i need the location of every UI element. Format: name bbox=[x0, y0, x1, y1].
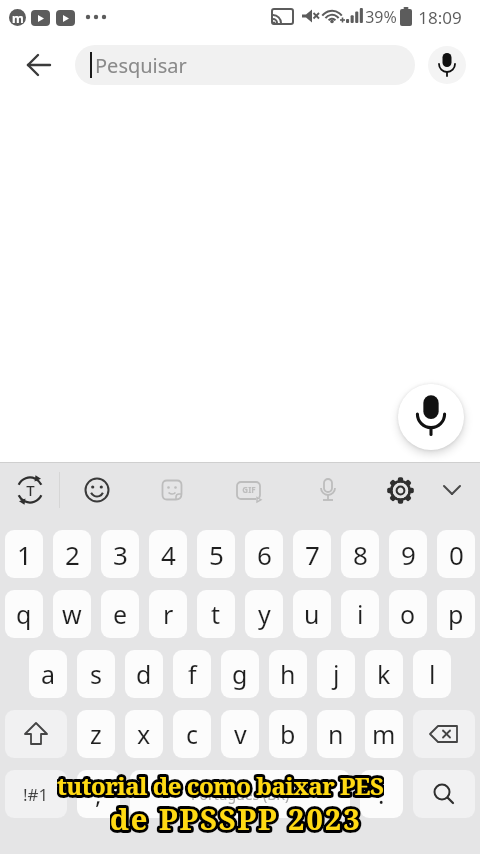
button[interactable]: x bbox=[125, 710, 163, 758]
button[interactable] bbox=[442, 484, 462, 496]
button[interactable] bbox=[84, 477, 110, 503]
button[interactable]: r bbox=[149, 590, 187, 638]
staticText: q bbox=[16, 597, 32, 631]
button[interactable]: u bbox=[293, 590, 331, 638]
button[interactable] bbox=[236, 481, 261, 500]
button[interactable]: !#1 bbox=[5, 770, 67, 818]
staticText: e bbox=[113, 597, 128, 631]
staticText: s bbox=[90, 657, 102, 691]
button[interactable]: 7 bbox=[293, 530, 331, 578]
button[interactable]: 0 bbox=[437, 530, 475, 578]
button[interactable]: a bbox=[29, 650, 67, 698]
button[interactable]: h bbox=[269, 650, 307, 698]
staticText: j bbox=[333, 657, 340, 691]
staticText: 0 bbox=[449, 537, 464, 572]
staticText: 3 bbox=[113, 537, 128, 572]
staticText: . bbox=[378, 778, 385, 811]
button[interactable]: 9 bbox=[389, 530, 427, 578]
button[interactable]: b bbox=[269, 710, 307, 758]
staticText: t bbox=[211, 597, 221, 631]
button[interactable] bbox=[15, 475, 45, 505]
button[interactable] bbox=[413, 770, 475, 818]
staticText: k bbox=[377, 657, 391, 691]
staticText: 4 bbox=[161, 537, 176, 572]
staticText: w bbox=[62, 597, 82, 631]
button[interactable]: m bbox=[365, 710, 403, 758]
staticText: m bbox=[372, 717, 396, 751]
button[interactable]: 5 bbox=[197, 530, 235, 578]
staticText: , bbox=[95, 778, 102, 811]
staticText: h bbox=[280, 657, 296, 691]
button[interactable]: c bbox=[173, 710, 211, 758]
staticText: 39% bbox=[365, 6, 397, 28]
staticText: p bbox=[448, 597, 464, 631]
button[interactable]: p bbox=[437, 590, 475, 638]
staticText: 5 bbox=[209, 537, 224, 572]
button[interactable]: 1 bbox=[5, 530, 43, 578]
button[interactable]: Português (BR) bbox=[130, 770, 350, 818]
staticText: tutorial de como baixar PES bbox=[57, 769, 384, 801]
button[interactable]: d bbox=[125, 650, 163, 698]
staticText: Português (BR) bbox=[191, 785, 290, 804]
staticText: x bbox=[137, 717, 151, 751]
button[interactable] bbox=[386, 476, 415, 505]
staticText: tutorial de como baixar PES bbox=[57, 769, 384, 801]
button[interactable]: 4 bbox=[149, 530, 187, 578]
staticText: z bbox=[90, 717, 102, 751]
button[interactable] bbox=[314, 477, 342, 505]
button[interactable]: , bbox=[77, 770, 120, 818]
staticText: c bbox=[186, 717, 199, 751]
button[interactable] bbox=[5, 710, 67, 758]
button[interactable]: s bbox=[77, 650, 115, 698]
button[interactable] bbox=[413, 710, 475, 758]
button[interactable]: g bbox=[221, 650, 259, 698]
button[interactable]: 3 bbox=[101, 530, 139, 578]
staticText: o bbox=[400, 597, 416, 631]
button[interactable] bbox=[398, 384, 464, 450]
button[interactable]: w bbox=[53, 590, 91, 638]
staticText: y bbox=[258, 597, 271, 631]
staticText: 9 bbox=[401, 537, 416, 572]
staticText: v bbox=[234, 717, 247, 751]
staticText: l bbox=[429, 657, 436, 691]
button[interactable]: o bbox=[389, 590, 427, 638]
staticText: 1 bbox=[17, 537, 32, 572]
button[interactable]: 2 bbox=[53, 530, 91, 578]
staticText: de PPSSPP 2023 bbox=[110, 799, 362, 833]
staticText: de PPSSPP 2023 bbox=[110, 799, 362, 833]
button[interactable]: . bbox=[360, 770, 403, 818]
staticText: n bbox=[328, 717, 344, 751]
button[interactable]: k bbox=[365, 650, 403, 698]
staticText: b bbox=[280, 717, 296, 751]
staticText: f bbox=[188, 657, 197, 691]
button[interactable]: n bbox=[317, 710, 355, 758]
staticText: g bbox=[232, 657, 248, 691]
button[interactable]: Pesquisar bbox=[75, 45, 415, 85]
staticText: 7 bbox=[305, 537, 320, 572]
button[interactable]: z bbox=[77, 710, 115, 758]
button[interactable]: e bbox=[101, 590, 139, 638]
button[interactable] bbox=[428, 46, 466, 84]
staticText: d bbox=[136, 657, 152, 691]
button[interactable]: 8 bbox=[341, 530, 379, 578]
staticText: T bbox=[26, 480, 35, 500]
staticText: 8 bbox=[353, 537, 368, 572]
button[interactable]: y bbox=[245, 590, 283, 638]
button[interactable]: t bbox=[197, 590, 235, 638]
staticText: u bbox=[304, 597, 320, 631]
staticText: r bbox=[163, 597, 174, 631]
button[interactable]: i bbox=[341, 590, 379, 638]
staticText: 18:09 bbox=[418, 6, 462, 28]
button[interactable]: f bbox=[173, 650, 211, 698]
button[interactable]: q bbox=[5, 590, 43, 638]
button[interactable] bbox=[160, 478, 184, 502]
button[interactable] bbox=[26, 52, 52, 78]
staticText: m bbox=[12, 10, 24, 26]
staticText: i bbox=[357, 597, 364, 631]
button[interactable]: j bbox=[317, 650, 355, 698]
staticText: Pesquisar bbox=[95, 52, 187, 79]
staticText: GIF bbox=[242, 484, 256, 495]
button[interactable]: l bbox=[413, 650, 451, 698]
button[interactable]: 6 bbox=[245, 530, 283, 578]
button[interactable]: v bbox=[221, 710, 259, 758]
